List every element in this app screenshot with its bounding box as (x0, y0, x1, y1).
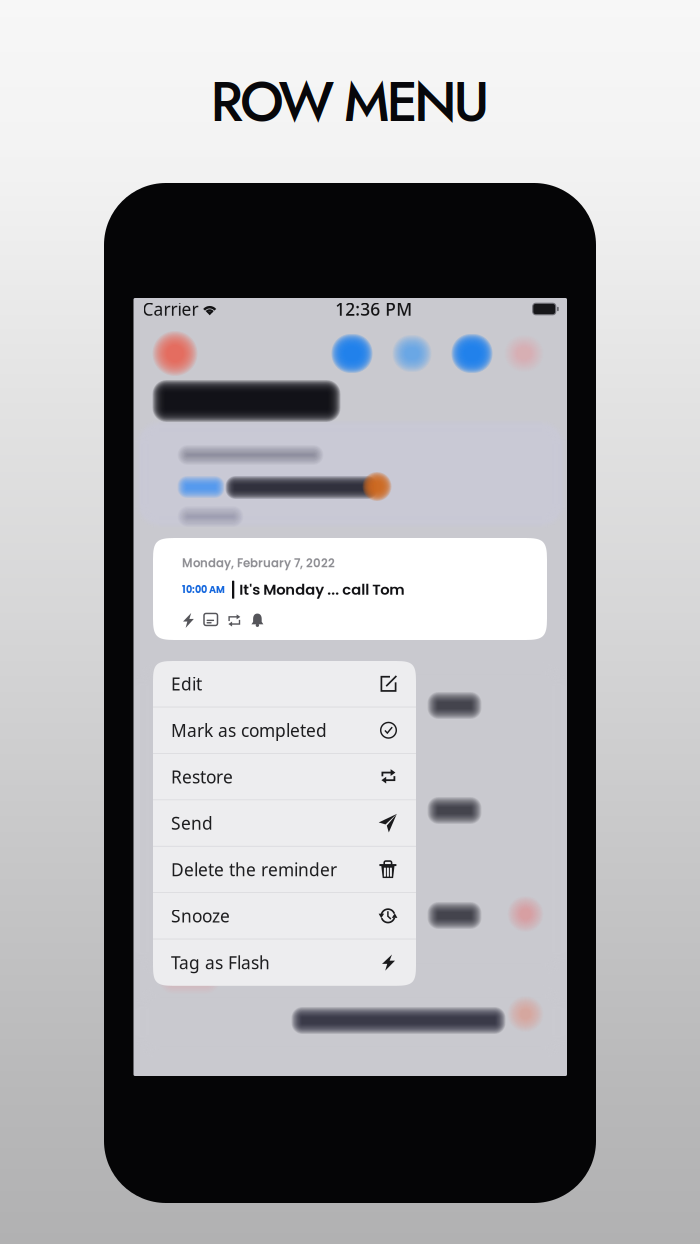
button[interactable]: Monday, February 7, 2022 (153, 538, 547, 640)
staticText: Delete the reminder (171, 858, 337, 881)
staticText: Edit (171, 672, 202, 695)
button[interactable]: Send (153, 800, 416, 847)
button[interactable]: Edit (153, 661, 416, 707)
button[interactable]: Delete the reminder (153, 847, 416, 893)
button[interactable]: Mark as completed (153, 707, 416, 754)
staticText: Send (171, 811, 213, 834)
staticText: 12:36 PM (335, 297, 412, 320)
staticText: Mark as completed (171, 719, 327, 742)
staticText: Snooze (171, 904, 230, 927)
staticText: 10:00 AM (182, 583, 225, 596)
staticText: Tag as Flash (171, 951, 270, 974)
button[interactable]: Tag as Flash (153, 939, 416, 986)
staticText: ROW MENU (210, 62, 490, 141)
staticText: Carrier (142, 297, 198, 320)
staticText: It's Monday ... call Tom (239, 579, 404, 600)
staticText: Monday, February 7, 2022 (182, 555, 335, 571)
staticText: Restore (171, 765, 233, 788)
button[interactable]: Snooze (153, 893, 416, 939)
button[interactable]: Restore (153, 754, 416, 800)
